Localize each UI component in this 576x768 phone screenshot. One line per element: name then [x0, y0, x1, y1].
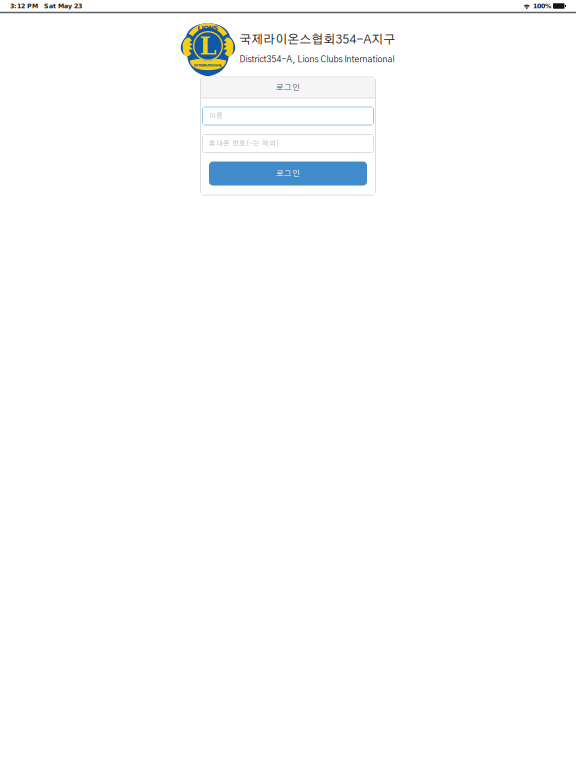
staticText: INTERNATIONAL	[194, 64, 222, 67]
button[interactable]: 로그인	[209, 161, 367, 185]
staticText: 100%	[531, 2, 551, 10]
staticText: L	[199, 32, 216, 60]
staticText: 로그인	[276, 83, 300, 91]
staticText: Sat May 23	[38, 2, 82, 10]
button[interactable]: 휴대폰 번호(-는 제외)	[202, 134, 374, 153]
staticText: District354-A, Lions Clubs International	[239, 55, 394, 64]
staticText: 국제라이온스협회354-A지구	[239, 34, 395, 46]
staticText: 로그인	[276, 169, 300, 177]
staticText: 휴대폰 번호(-는 제외)	[209, 140, 279, 147]
staticText: 이름	[209, 112, 223, 119]
staticText: 3:12 PM	[10, 2, 38, 10]
button[interactable]: 이름	[202, 106, 374, 125]
staticText: LIONS	[197, 24, 218, 32]
